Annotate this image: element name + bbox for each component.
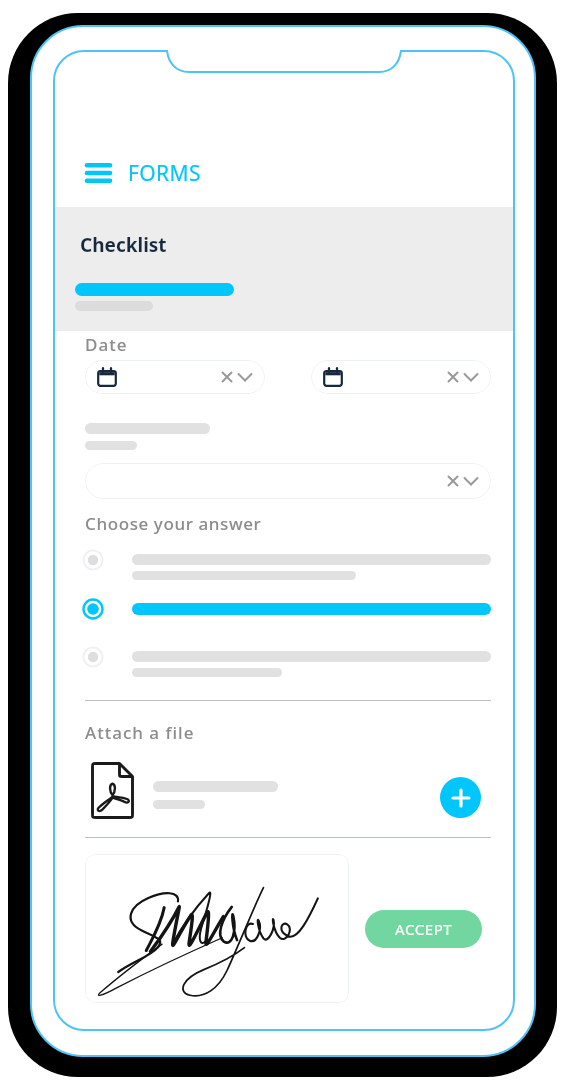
staticText: Attach a file <box>85 721 195 744</box>
staticText: Checklist <box>80 232 167 258</box>
other: Menu <box>85 163 112 183</box>
button[interactable]: ACCEPT <box>365 910 482 948</box>
button[interactable]: Add attachment <box>440 777 481 818</box>
button[interactable]: Menu <box>54 147 514 199</box>
staticText: ACCEPT <box>395 919 453 939</box>
button[interactable] <box>85 463 491 499</box>
button[interactable] <box>85 854 349 1003</box>
button[interactable] <box>85 360 265 394</box>
button[interactable] <box>82 646 491 678</box>
button[interactable] <box>82 598 491 630</box>
button[interactable] <box>82 549 491 581</box>
staticText: Choose your answer <box>85 512 262 535</box>
button[interactable] <box>311 360 491 394</box>
staticText: Date <box>85 333 128 356</box>
staticText: FORMS <box>128 159 201 188</box>
